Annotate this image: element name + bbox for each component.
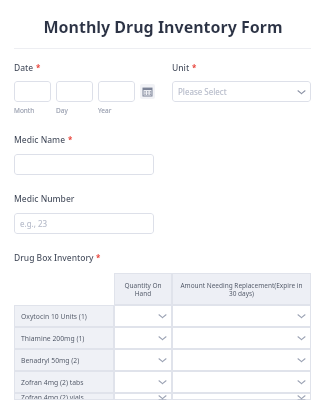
staticText: Medic Number [14,193,75,205]
button[interactable]: Quantity on hand for Zofran 4mg (2) vial… [114,393,172,400]
staticText: Medic Name [14,134,66,146]
staticText: Thiamine 200mg (1) [21,334,85,343]
staticText: Drug Box Inventory [14,252,94,264]
button[interactable] [14,154,154,175]
staticText: * [68,134,73,145]
staticText: Oxytocin 10 Units (1) [21,312,87,321]
staticText: * [192,62,197,73]
staticText: Please Select [178,86,298,97]
button[interactable]: Quantity on hand for Benadryl 50mg (2) [114,349,172,371]
staticText: Zofran 4mg (2) tabs [21,378,84,387]
staticText: Year [98,106,112,115]
staticText: Amount Needing Replacement(Expire in 30 … [176,281,307,298]
button[interactable]: Amount needing replacement for Zofran 4m… [172,393,311,400]
staticText: * [36,62,41,73]
staticText: Monthly Drug Inventory Form [43,16,283,38]
button[interactable]: e.g., 23 [14,213,154,234]
staticText: Month [14,106,35,115]
staticText: Benadryl 50mg (2) [21,356,80,365]
button[interactable]: Open calendar picker [140,84,155,99]
staticText: Unit [172,62,190,74]
staticText: Date [14,62,34,74]
button[interactable] [14,81,51,102]
staticText: Day [56,106,68,115]
button[interactable]: Quantity on hand for Zofran 4mg (2) tabs [114,371,172,393]
button[interactable] [98,81,135,102]
button[interactable]: Amount needing replacement for Thiamine … [172,327,311,349]
button[interactable]: Amount needing replacement for Benadryl … [172,349,311,371]
button[interactable] [56,81,93,102]
button[interactable]: Quantity on hand for Thiamine 200mg (1) [114,327,172,349]
button[interactable]: Amount needing replacement for Zofran 4m… [172,371,311,393]
button[interactable]: Amount needing replacement for Oxytocin … [172,305,311,327]
staticText: * [96,252,101,263]
button[interactable]: Quantity on hand for Oxytocin 10 Units (… [114,305,172,327]
staticText: e.g., 23 [20,218,48,229]
staticText: Zofran 4mg (2) vials [21,393,84,400]
staticText: Quantity On Hand [117,281,169,298]
button[interactable]: Unit select [172,81,311,102]
